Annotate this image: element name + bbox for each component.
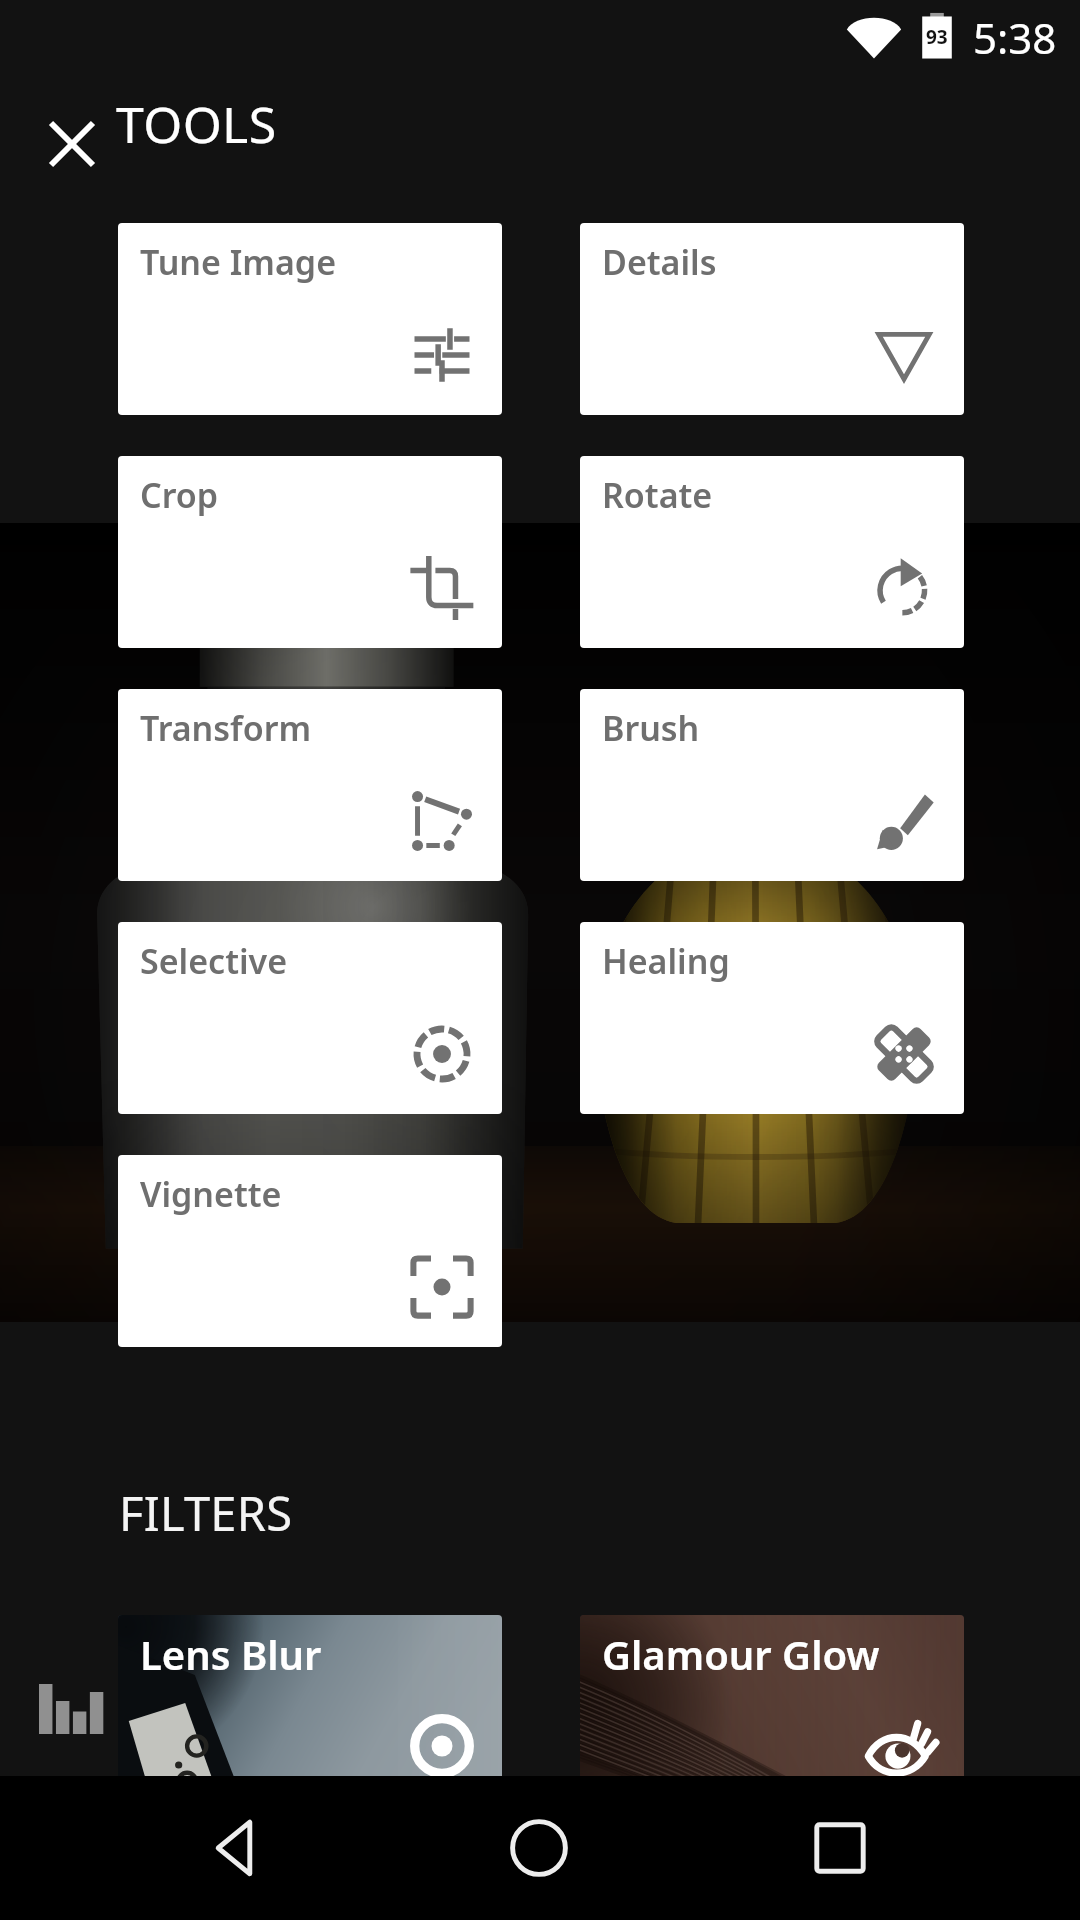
staticText: Vignette <box>140 1171 282 1217</box>
staticText: Selective <box>140 938 288 984</box>
staticText: Rotate <box>602 472 713 518</box>
button[interactable]: Tune Image <box>118 223 502 415</box>
staticText: FILTERS <box>119 1481 293 1545</box>
staticText: Brush <box>602 705 700 751</box>
staticText: Lens Blur <box>140 1627 322 1681</box>
staticText: 93 <box>926 24 948 50</box>
button[interactable]: Crop <box>118 456 502 648</box>
staticText: Healing <box>602 938 730 984</box>
button[interactable]: Glamour Glow <box>580 1615 964 1815</box>
button[interactable]: Healing <box>580 922 964 1114</box>
button[interactable]: Brush <box>580 689 964 881</box>
staticText: 5:38 <box>973 9 1057 66</box>
button[interactable]: Selective <box>118 922 502 1114</box>
button[interactable]: Rotate <box>580 456 964 648</box>
staticText: TOOLS <box>116 90 277 158</box>
staticText: Tune Image <box>140 239 337 285</box>
button[interactable]: Lens Blur <box>118 1615 502 1815</box>
button[interactable]: Recents <box>768 1776 912 1920</box>
button[interactable]: Vignette <box>118 1155 502 1347</box>
button[interactable]: Close <box>28 100 116 188</box>
staticText: Transform <box>140 705 312 751</box>
staticText: Details <box>602 239 717 285</box>
staticText: Glamour Glow <box>602 1627 880 1681</box>
button[interactable]: Histogram <box>22 1660 120 1758</box>
button[interactable]: Home <box>467 1776 611 1920</box>
staticText: Crop <box>140 472 219 518</box>
button[interactable]: Transform <box>118 689 502 881</box>
button[interactable]: Details <box>580 223 964 415</box>
button[interactable]: Back <box>172 1776 316 1920</box>
